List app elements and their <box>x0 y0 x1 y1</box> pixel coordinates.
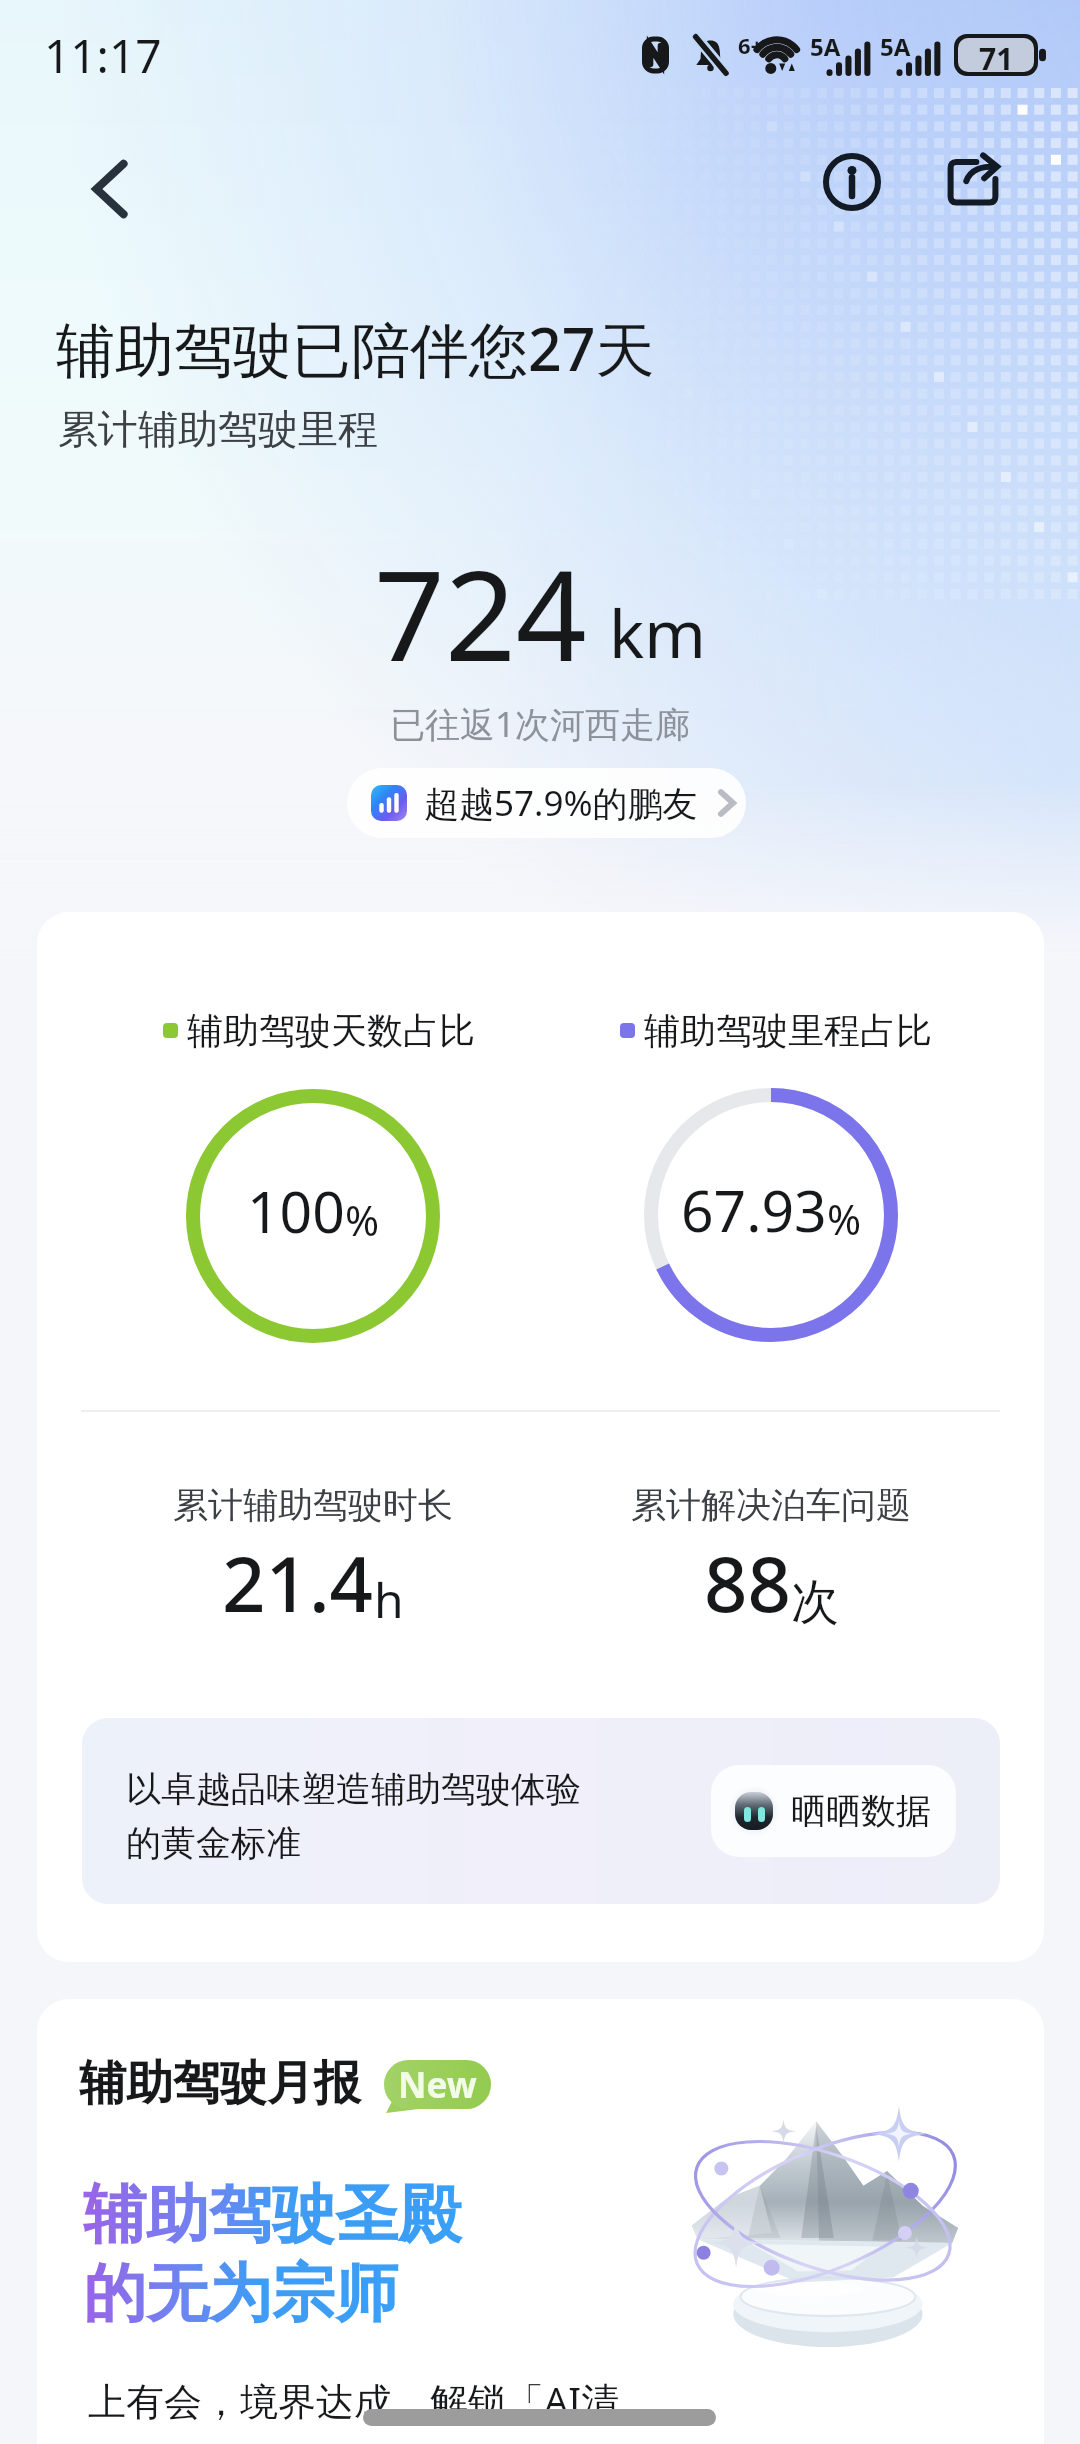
button[interactable]: Back <box>68 147 152 231</box>
staticText: 的黄金标准 <box>126 1821 301 1865</box>
staticText: 辅助驾驶已陪伴您27天 <box>56 308 655 389</box>
staticText: h <box>374 1567 404 1632</box>
staticText: 晒晒数据 <box>791 1789 931 1833</box>
staticText: 71 <box>979 38 1014 72</box>
button[interactable]: 晒晒数据 <box>711 1765 956 1857</box>
staticText: 的无为宗师 <box>83 2254 398 2333</box>
staticText: 21.4 <box>222 1531 374 1635</box>
button[interactable]: Info <box>810 140 894 224</box>
staticText: 67.93 <box>681 1171 827 1249</box>
staticText: km <box>609 587 706 677</box>
staticText: 次 <box>791 1572 839 1632</box>
staticText: 88 <box>704 1531 791 1635</box>
staticText: 100 <box>247 1172 345 1250</box>
staticText: 11:17 <box>44 24 162 87</box>
staticText: 已往返1次河西走廊 <box>0 700 1080 748</box>
staticText: 以卓越品味塑造辅助驾驶体验 <box>126 1767 581 1811</box>
staticText: 6+ <box>738 30 764 60</box>
staticText: 724 <box>374 528 587 697</box>
staticText: 辅助驾驶里程占比 <box>644 1008 932 1053</box>
staticText: 辅助驾驶圣殿 <box>83 2175 461 2254</box>
staticText: 累计辅助驾驶里程 <box>58 404 378 454</box>
staticText: % <box>345 1192 380 1248</box>
staticText: New <box>398 2061 477 2109</box>
staticText: % <box>827 1191 862 1247</box>
staticText: 辅助驾驶天数占比 <box>187 1008 475 1053</box>
button[interactable]: Share <box>931 138 1015 222</box>
staticText: 累计辅助驾驶时长 <box>173 1483 453 1527</box>
button[interactable]: 超越57.9%的鹏友 <box>347 768 746 838</box>
staticText: 上有会，境界达成，解锁「AI清 <box>88 2374 620 2426</box>
staticText: 累计解决泊车问题 <box>631 1483 911 1527</box>
staticText: 5A <box>880 30 911 63</box>
staticText: 超越57.9%的鹏友 <box>424 779 698 827</box>
staticText: 辅助驾驶月报 <box>79 2054 361 2113</box>
staticText: 5A <box>810 30 841 63</box>
